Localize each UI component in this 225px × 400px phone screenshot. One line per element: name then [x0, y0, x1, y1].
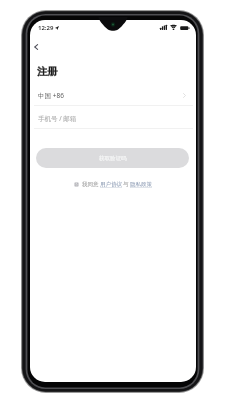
- button[interactable]: 隐私政策: [130, 181, 152, 188]
- button[interactable]: Agree to terms: [75, 183, 78, 186]
- staticText: 注册: [37, 65, 57, 78]
- staticText: 我同意: [82, 181, 99, 188]
- button[interactable]: 用户协议: [100, 181, 122, 188]
- staticText: 12:29: [38, 24, 54, 32]
- staticText: 注册: [37, 65, 57, 78]
- staticText: 中国 +86: [38, 91, 64, 100]
- staticText: 获取验证码: [99, 155, 127, 162]
- button[interactable]: 获取验证码: [36, 148, 189, 168]
- staticText: 手机号 / 邮箱: [38, 114, 77, 123]
- staticText: 与: [123, 181, 129, 188]
- button[interactable]: 中国 +86: [30, 84, 196, 107]
- button[interactable]: Back: [30, 34, 55, 59]
